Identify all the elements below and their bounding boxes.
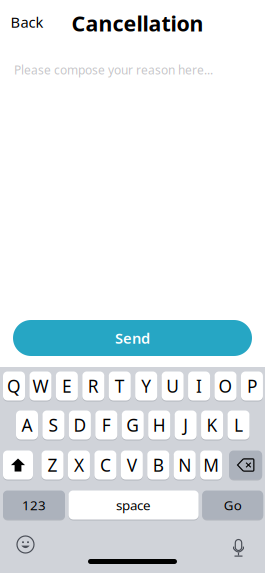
- staticText: E: [62, 374, 72, 397]
- staticText: Send: [115, 328, 150, 348]
- button[interactable]: 123: [3, 490, 65, 520]
- button[interactable]: Go: [202, 490, 263, 520]
- staticText: D: [73, 413, 86, 436]
- button[interactable]: E: [56, 371, 78, 401]
- staticText: U: [166, 374, 179, 397]
- staticText: space: [116, 496, 151, 514]
- button[interactable]: C: [94, 450, 116, 480]
- button[interactable]: L: [227, 410, 249, 440]
- staticText: X: [74, 453, 84, 476]
- staticText: C: [100, 453, 111, 476]
- staticText: Cancellation: [71, 9, 203, 37]
- button[interactable]: D: [69, 410, 91, 440]
- staticText: Q: [7, 374, 21, 397]
- button[interactable]: space: [69, 490, 199, 520]
- button[interactable]: O: [214, 371, 236, 401]
- staticText: J: [183, 413, 188, 436]
- staticText: 123: [22, 496, 46, 514]
- button[interactable]: M: [200, 450, 222, 480]
- staticText: K: [207, 413, 218, 436]
- button[interactable]: J: [175, 410, 197, 440]
- button[interactable]: F: [95, 410, 117, 440]
- button[interactable]: Send: [13, 320, 252, 356]
- button[interactable]: N: [174, 450, 196, 480]
- staticText: H: [153, 413, 166, 436]
- button[interactable]: K: [201, 410, 223, 440]
- button[interactable]: Q: [3, 371, 25, 401]
- staticText: P: [247, 374, 257, 397]
- button[interactable]: Emoji keyboard: [17, 536, 34, 553]
- staticText: W: [32, 374, 48, 397]
- button[interactable]: S: [42, 410, 64, 440]
- button[interactable]: R: [82, 371, 104, 401]
- button[interactable]: G: [122, 410, 144, 440]
- staticText: Y: [141, 374, 151, 397]
- staticText: N: [178, 453, 191, 476]
- staticText: Go: [224, 496, 242, 514]
- staticText: A: [21, 413, 32, 436]
- staticText: Please compose your reason here...: [14, 62, 213, 78]
- button[interactable]: Delete: [229, 450, 262, 480]
- button[interactable]: V: [121, 450, 143, 480]
- button[interactable]: X: [68, 450, 90, 480]
- button[interactable]: H: [148, 410, 170, 440]
- button[interactable]: Shift: [3, 450, 33, 480]
- staticText: Z: [47, 453, 57, 476]
- staticText: G: [126, 413, 139, 436]
- staticText: B: [153, 453, 164, 476]
- button[interactable]: Dictation: [233, 536, 244, 554]
- staticText: O: [218, 374, 232, 397]
- staticText: S: [48, 413, 58, 436]
- staticText: R: [88, 374, 99, 397]
- button[interactable]: I: [188, 371, 210, 401]
- staticText: F: [102, 413, 111, 436]
- staticText: V: [127, 453, 137, 476]
- staticText: I: [196, 374, 202, 397]
- button[interactable]: U: [162, 371, 184, 401]
- button[interactable]: B: [147, 450, 169, 480]
- button[interactable]: T: [109, 371, 131, 401]
- button[interactable]: W: [29, 371, 51, 401]
- button[interactable]: A: [16, 410, 38, 440]
- staticText: Back: [10, 12, 43, 32]
- button[interactable]: Back: [1, 2, 53, 42]
- staticText: M: [203, 453, 219, 476]
- button[interactable]: P: [241, 371, 263, 401]
- button[interactable]: Z: [41, 450, 63, 480]
- button[interactable]: Y: [135, 371, 157, 401]
- staticText: T: [115, 374, 125, 397]
- staticText: L: [234, 413, 243, 436]
